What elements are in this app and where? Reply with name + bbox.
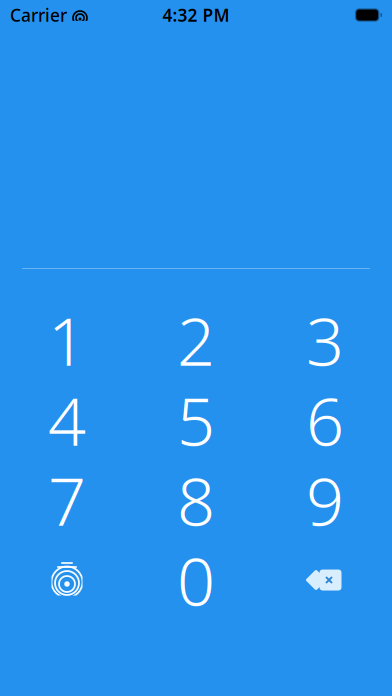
staticText: 2 bbox=[177, 296, 215, 384]
button[interactable]: 9 bbox=[260, 460, 389, 540]
staticText: 0 bbox=[177, 536, 215, 624]
button[interactable]: Touch ID bbox=[2, 540, 131, 620]
staticText: 8 bbox=[177, 456, 215, 544]
staticText: 3 bbox=[306, 296, 344, 384]
button[interactable]: 3 bbox=[260, 300, 389, 380]
staticText: 4:32 PM bbox=[162, 3, 229, 26]
button[interactable]: 5 bbox=[131, 380, 260, 460]
staticText: 7 bbox=[48, 456, 86, 544]
staticText: 1 bbox=[48, 296, 86, 384]
staticText: 4 bbox=[48, 376, 86, 464]
staticText: Carrier bbox=[10, 3, 67, 26]
button[interactable]: 7 bbox=[2, 460, 131, 540]
staticText: 6 bbox=[306, 376, 344, 464]
staticText: 5 bbox=[177, 376, 215, 464]
button[interactable]: 2 bbox=[131, 300, 260, 380]
button[interactable]: 1 bbox=[2, 300, 131, 380]
button[interactable]: 6 bbox=[260, 380, 389, 460]
button[interactable]: 8 bbox=[131, 460, 260, 540]
staticText: 9 bbox=[306, 456, 344, 544]
button[interactable]: 4 bbox=[2, 380, 131, 460]
button[interactable]: Delete bbox=[260, 540, 389, 620]
button[interactable]: 0 bbox=[131, 540, 260, 620]
